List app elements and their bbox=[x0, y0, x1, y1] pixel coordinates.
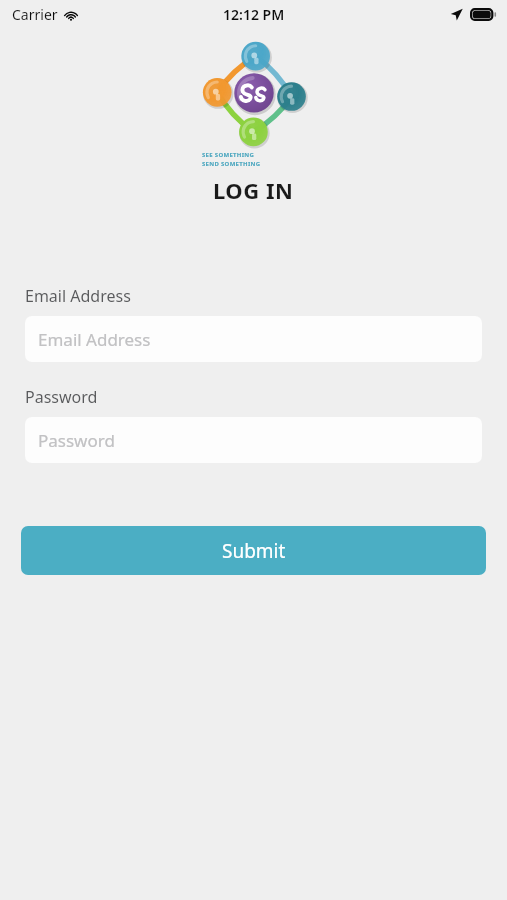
staticText: SEND SOMETHING bbox=[202, 160, 261, 168]
button[interactable]: Submit bbox=[21, 526, 486, 575]
staticText: SEE SOMETHING bbox=[202, 151, 255, 159]
staticText: Password bbox=[38, 429, 115, 452]
button[interactable]: Password bbox=[25, 417, 482, 463]
staticText: Submit bbox=[222, 538, 286, 564]
staticText: Carrier bbox=[12, 5, 58, 24]
staticText: Email Address bbox=[38, 328, 151, 351]
staticText: 12:12 PM bbox=[223, 5, 285, 24]
button[interactable]: Email Address bbox=[25, 316, 482, 362]
staticText: LOG IN bbox=[213, 175, 294, 205]
staticText: Email Address bbox=[25, 285, 131, 307]
staticText: Password bbox=[25, 386, 98, 408]
